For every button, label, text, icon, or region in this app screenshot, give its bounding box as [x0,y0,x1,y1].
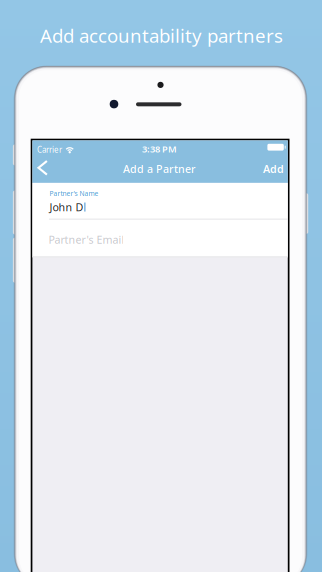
button[interactable]: Back [32,154,53,182]
button[interactable]: Add [260,155,288,183]
staticText: Carrier [37,144,62,155]
staticText: Add [263,162,284,176]
staticText: John D [49,200,83,214]
button[interactable]: Partner's Email [32,219,288,256]
staticText: Add a Partner [123,162,196,176]
button[interactable]: Partner's Name [32,183,288,219]
staticText: Partner's Name [49,189,98,198]
staticText: Partner's Email [48,232,124,247]
staticText: Add accountability partners [40,23,283,48]
staticText: 3:38 PM [142,143,177,155]
